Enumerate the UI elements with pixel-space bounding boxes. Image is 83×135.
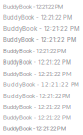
staticText: BuddyBook - 12:21:22 PM <box>3 3 63 10</box>
staticText: BuddyBook - 12:21:22 PM <box>3 58 71 66</box>
staticText: BuddyBook - 12:21:22 PM <box>3 114 71 121</box>
staticText: BuddyBook - 12:21:22 PM <box>3 125 66 132</box>
staticText: BuddyBook - 12:21:22 PM <box>3 104 71 110</box>
staticText: BuddyBook - 12:21:22 PM <box>3 70 72 77</box>
staticText: BuddyBook - 12:21:22 PM <box>3 36 76 43</box>
staticText: BuddyBook - 12:21:22 PM <box>3 81 79 88</box>
staticText: BuddyBook - 12:21:22 PM <box>3 14 72 21</box>
staticText: BuddyBook - 12:21:22 PM <box>3 92 70 100</box>
staticText: BuddyBook - 12:21:22 PM <box>3 25 80 32</box>
staticText: BuddyBook - 12:21:22 PM <box>3 47 66 54</box>
